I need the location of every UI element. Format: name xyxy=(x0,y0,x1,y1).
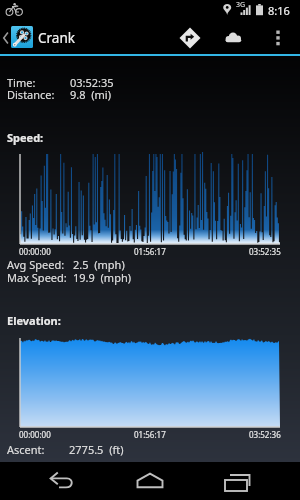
staticText: Ascent: xyxy=(7,442,45,457)
staticText: 03:52:35 xyxy=(249,246,281,257)
staticText: 2.5 (mph) xyxy=(73,257,125,272)
button[interactable]: Directions xyxy=(175,26,205,50)
staticText: 00:00:00 xyxy=(19,429,51,440)
staticText: Distance: xyxy=(7,87,55,102)
staticText: 2775.5 (ft) xyxy=(69,442,124,457)
staticText: 19.9 (mph) xyxy=(73,270,131,285)
button[interactable]: Recent apps xyxy=(220,469,252,493)
staticText: Avg Speed: xyxy=(7,257,65,272)
staticText: 01:56:17 xyxy=(134,429,166,440)
button[interactable]: Back xyxy=(46,469,78,493)
staticText: 01:56:17 xyxy=(134,246,166,257)
staticText: 03:52:36 xyxy=(249,429,281,440)
staticText: Speed: xyxy=(7,130,44,145)
staticText: 03:52:35 xyxy=(70,75,114,90)
button[interactable]: Navigate up xyxy=(0,24,11,52)
staticText: 3G xyxy=(236,0,246,10)
button[interactable]: More options xyxy=(266,26,290,50)
staticText: Max Speed: xyxy=(7,270,67,285)
staticText: 00:00:00 xyxy=(19,246,51,257)
button[interactable]: Home xyxy=(134,469,166,493)
staticText: Elevation: xyxy=(7,313,61,328)
staticText: Time: xyxy=(7,75,36,90)
staticText: Crank xyxy=(38,29,75,47)
button[interactable]: Upload to cloud xyxy=(220,26,248,50)
staticText: 9.8 (mi) xyxy=(70,87,111,102)
staticText: 8:16 xyxy=(268,3,290,18)
